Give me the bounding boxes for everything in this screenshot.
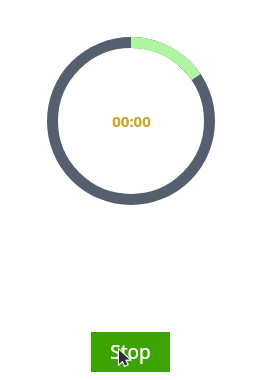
staticText: Stop — [110, 339, 151, 365]
staticText: 00:00 — [112, 111, 151, 131]
other: Pointer — [118, 350, 136, 368]
button[interactable]: Stop — [91, 332, 170, 372]
